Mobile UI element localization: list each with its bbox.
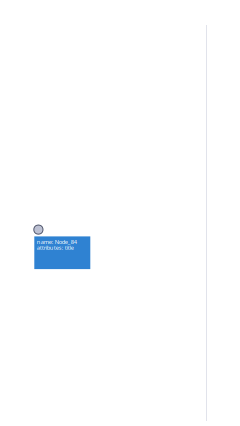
staticText: attributes: title (37, 244, 74, 251)
button[interactable]: name: Node_84 (34, 236, 90, 269)
staticText: name: Node_84 (37, 238, 77, 246)
button[interactable]: Node_84 (33, 225, 43, 235)
